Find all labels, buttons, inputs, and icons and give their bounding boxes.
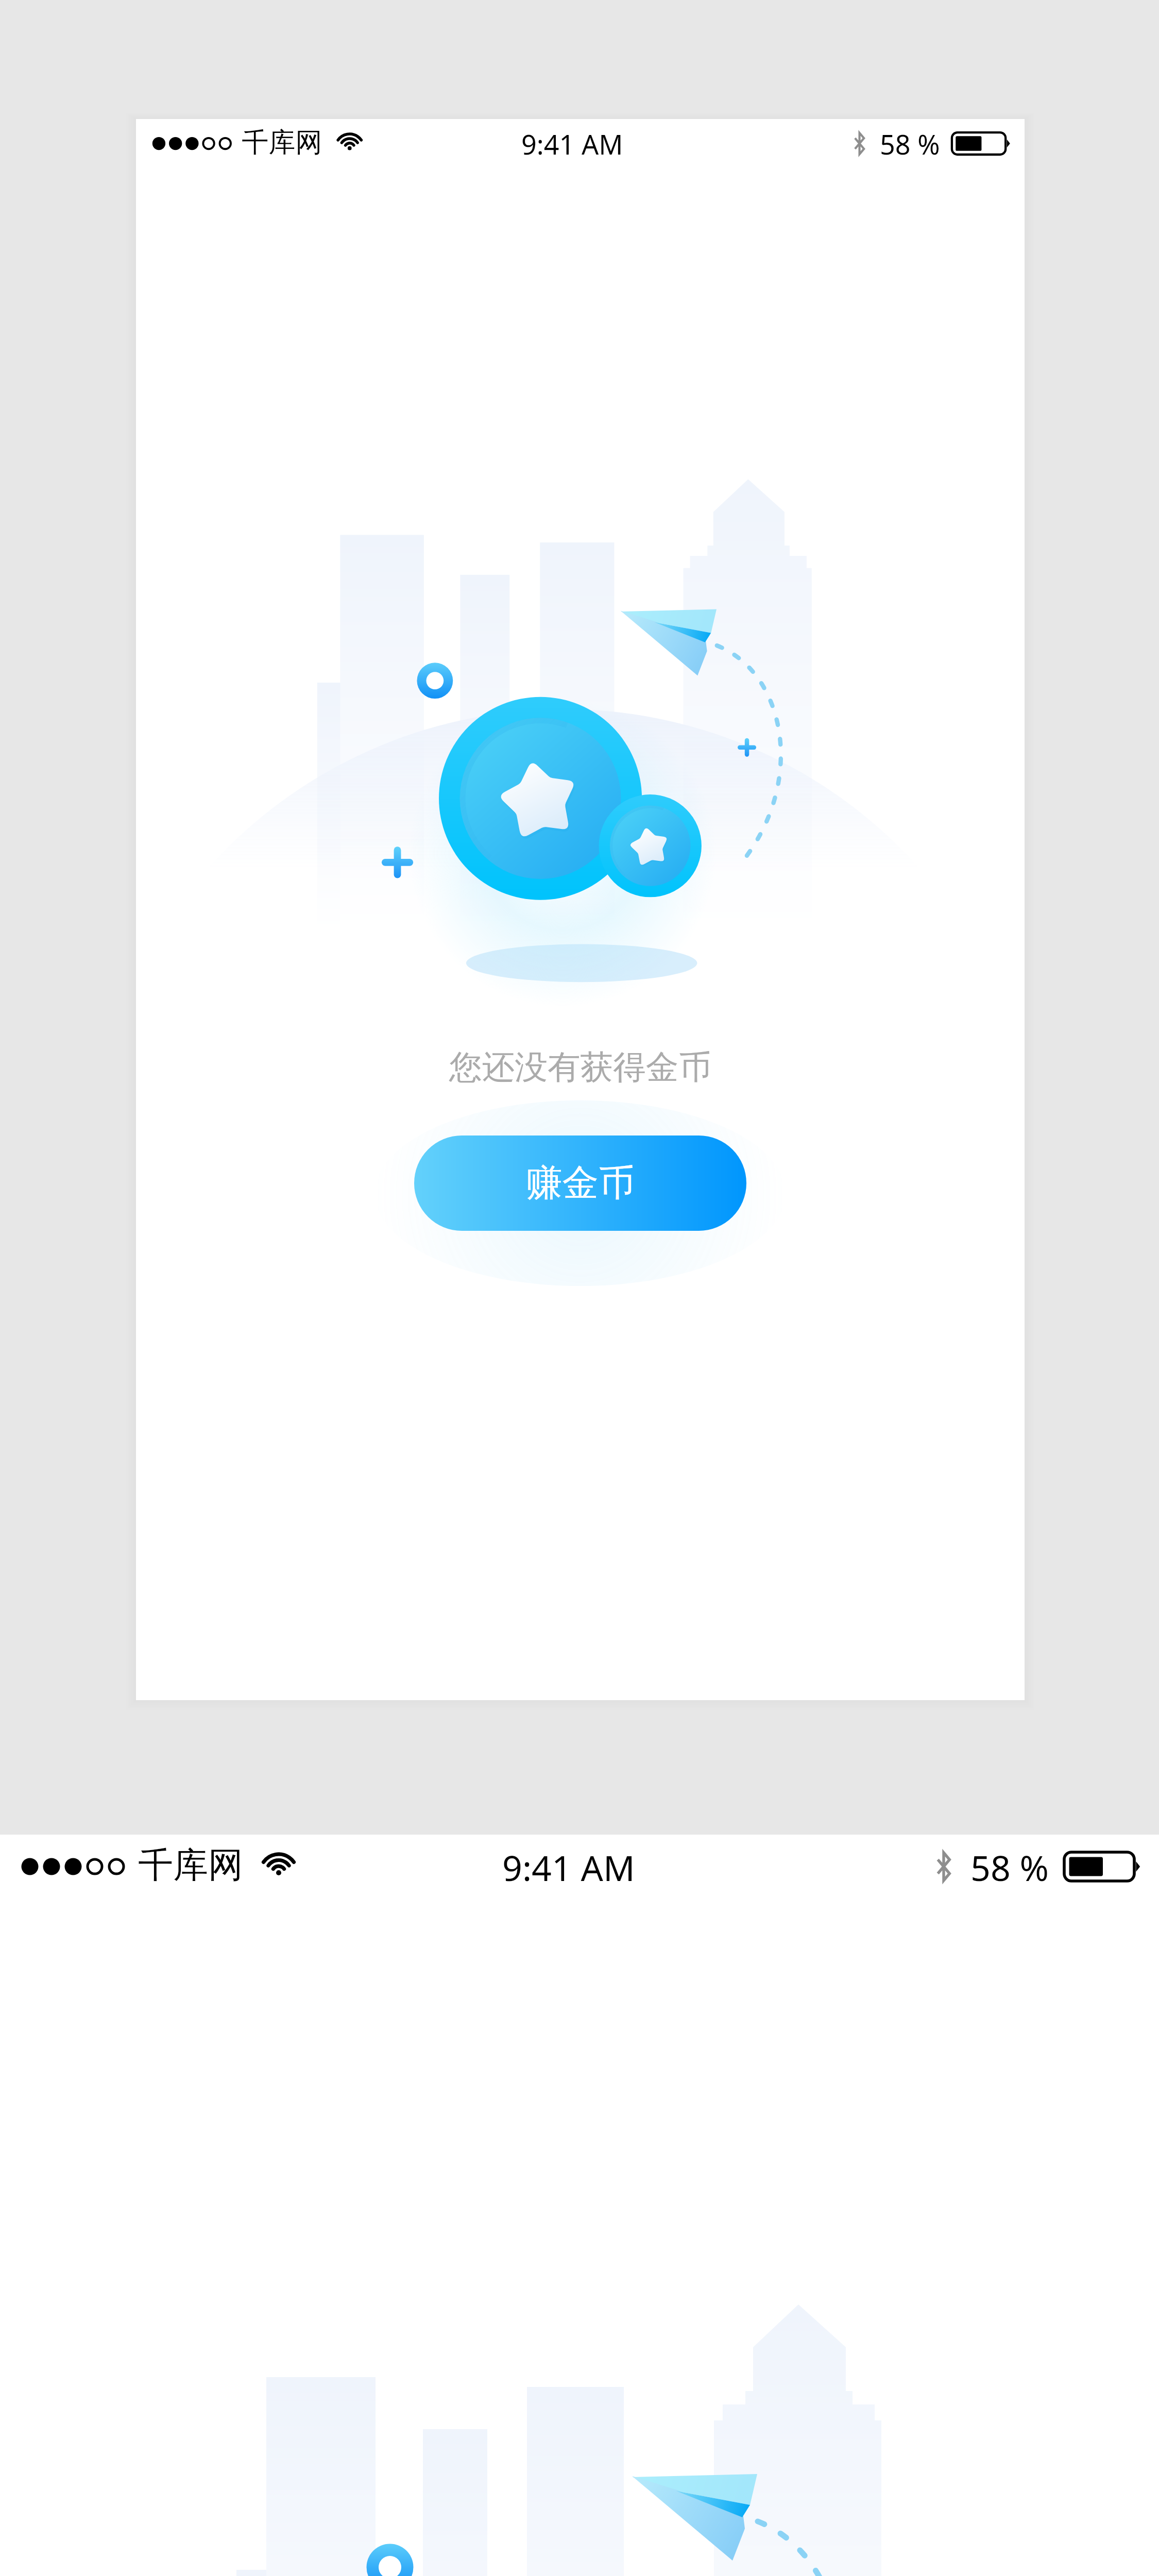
staticText: 58 % <box>970 1843 1049 1891</box>
staticText: 千库网 <box>138 1843 243 1888</box>
staticText: 9:41 AM <box>502 1843 635 1891</box>
staticText: 赚金币 <box>526 1160 635 1206</box>
button[interactable]: 赚金币 <box>414 1136 746 1231</box>
staticText: 千库网 <box>242 126 322 160</box>
staticText: 您还没有获得金币 <box>449 1047 711 1088</box>
staticText: 58 % <box>880 126 940 162</box>
staticText: 9:41 AM <box>521 126 623 162</box>
